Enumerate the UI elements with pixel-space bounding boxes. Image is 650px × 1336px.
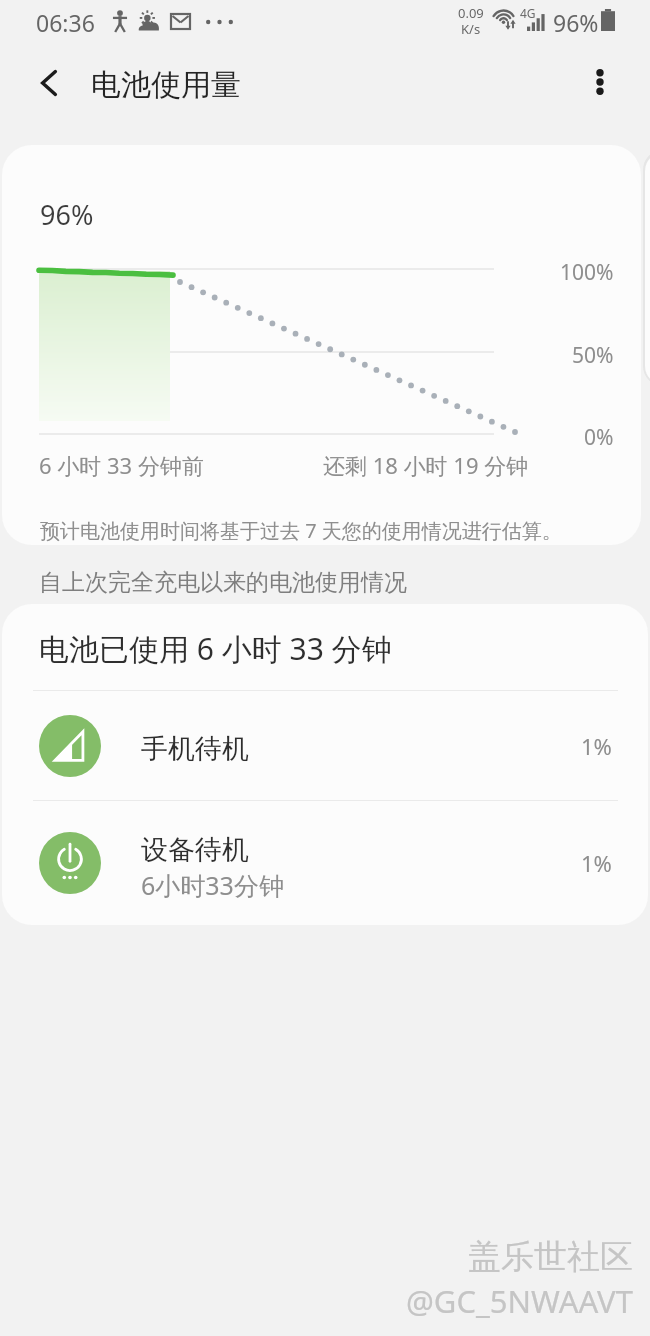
staticText: 1% bbox=[581, 731, 612, 761]
staticText: 电池已使用 6 小时 33 分钟 bbox=[39, 628, 392, 669]
button[interactable] bbox=[643, 150, 650, 386]
button[interactable]: 手机待机 bbox=[2, 691, 648, 800]
staticText: 4G bbox=[520, 5, 536, 21]
button[interactable]: More options bbox=[577, 59, 623, 105]
staticText: 96% bbox=[553, 7, 599, 38]
staticText: 电池使用量 bbox=[91, 66, 241, 104]
staticText: 0.09 bbox=[458, 4, 484, 22]
staticText: 06:36 bbox=[36, 7, 95, 38]
staticText: 盖乐世社区 bbox=[468, 1236, 633, 1278]
staticText: 手机待机 bbox=[141, 732, 249, 766]
staticText: 设备待机 bbox=[141, 833, 249, 867]
staticText: 6小时33分钟 bbox=[141, 868, 284, 902]
staticText: 6 小时 33 分钟前 bbox=[39, 450, 204, 480]
staticText: 预计电池使用时间将基于过去 7 天您的使用情况进行估算。 bbox=[40, 517, 562, 544]
staticText: 50% bbox=[572, 341, 614, 370]
staticText: 自上次完全充电以来的电池使用情况 bbox=[39, 568, 407, 597]
staticText: 还剩 18 小时 19 分钟 bbox=[323, 450, 529, 480]
button[interactable]: 96% bbox=[2, 145, 641, 545]
staticText: 96% bbox=[40, 196, 94, 233]
staticText: 0% bbox=[584, 423, 614, 452]
button[interactable]: 设备待机 bbox=[2, 801, 648, 925]
staticText: K/s bbox=[461, 20, 481, 38]
staticText: 1% bbox=[581, 848, 612, 878]
button[interactable]: Back bbox=[25, 59, 73, 107]
staticText: 100% bbox=[560, 258, 614, 287]
staticText: @GC_5NWAAVT bbox=[406, 1280, 633, 1322]
